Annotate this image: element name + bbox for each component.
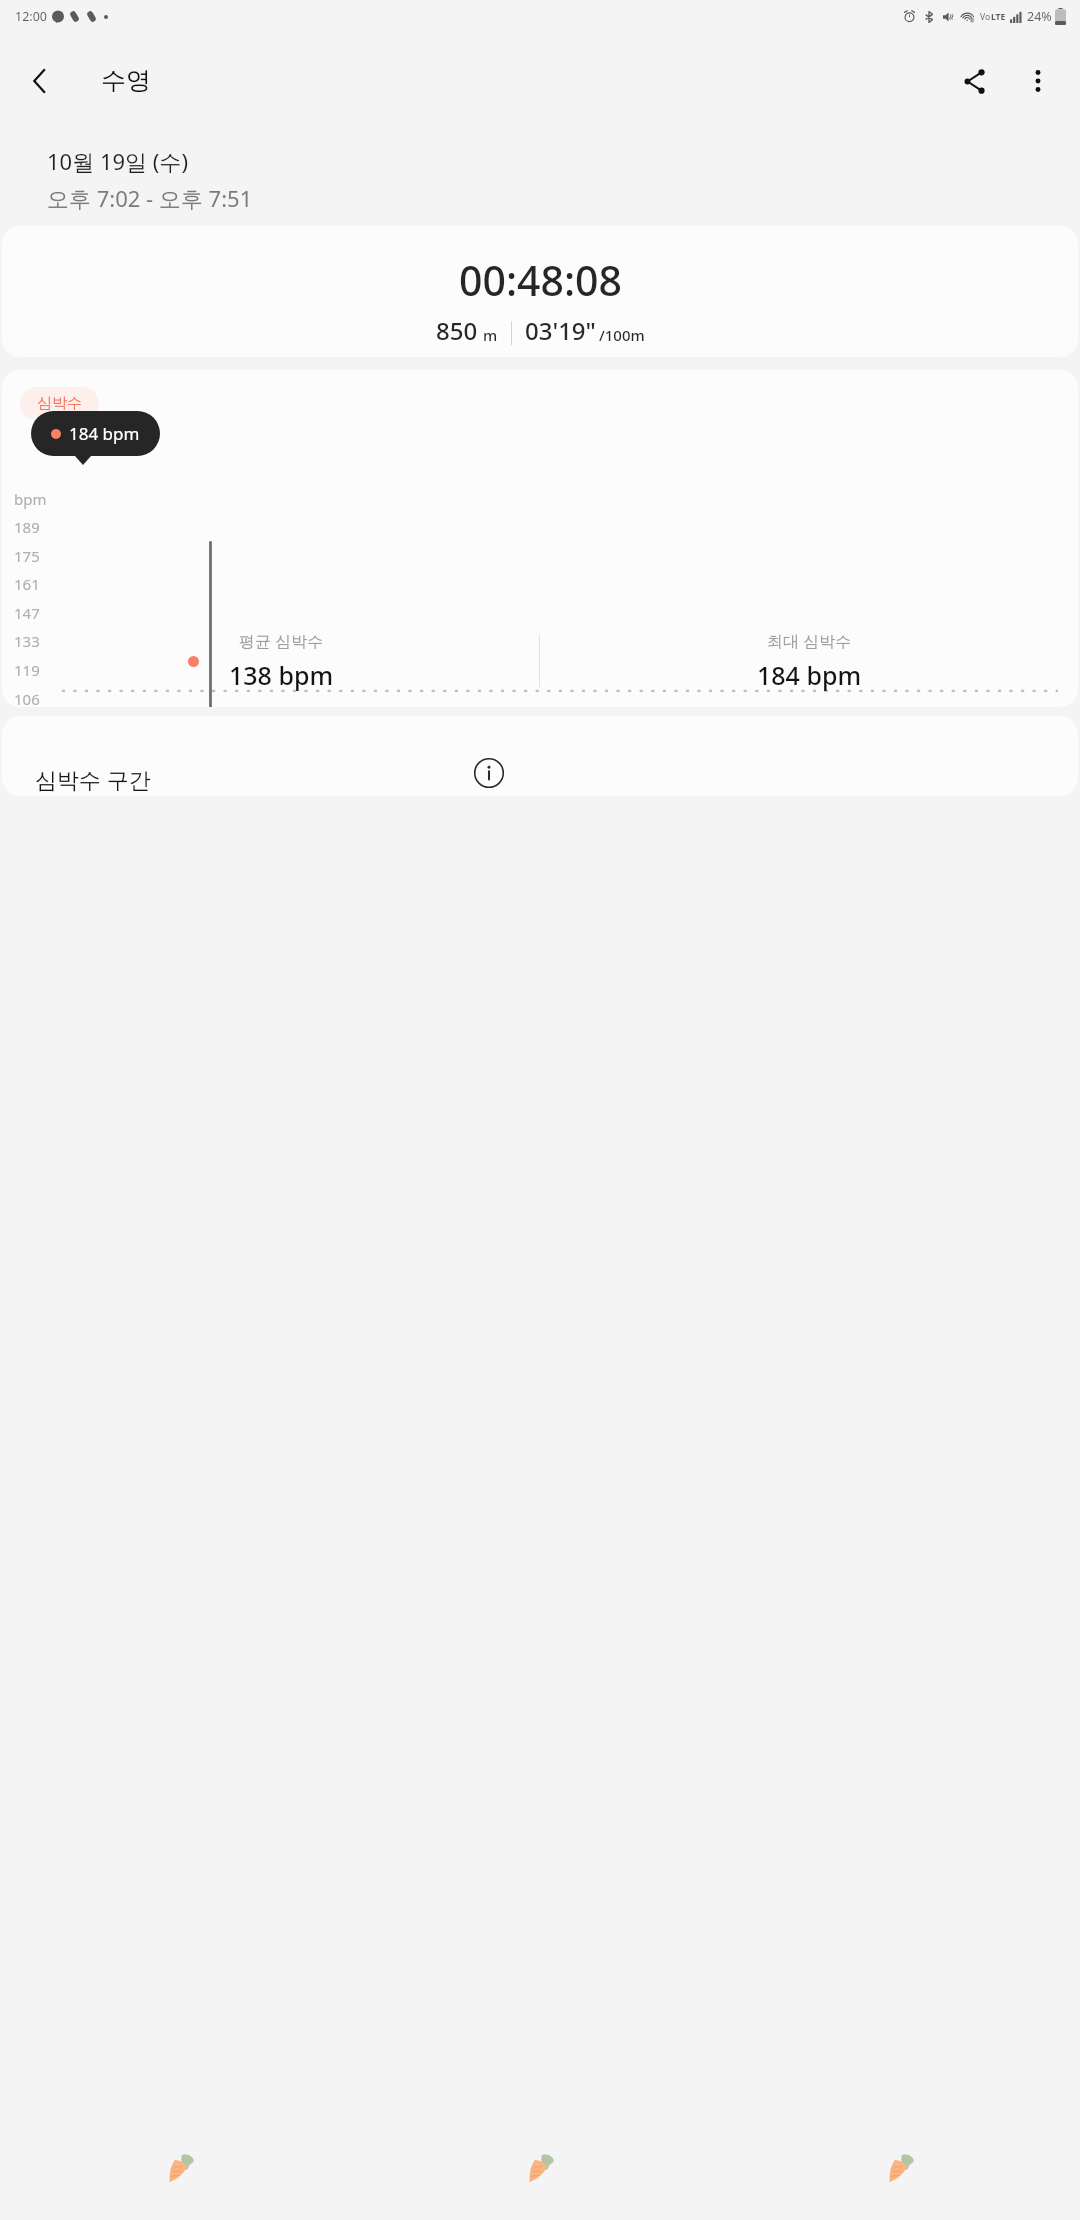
button[interactable]: Share — [942, 49, 1006, 113]
button[interactable]: Back — [8, 49, 72, 113]
staticText: 평균 심박수 — [239, 630, 324, 652]
other: Info — [472, 756, 506, 790]
staticText: 161 — [14, 574, 40, 594]
staticText: 오후 7:02 - 오후 7:51 — [47, 183, 253, 213]
staticText: 175 — [14, 546, 40, 566]
staticText: 184 bpm — [757, 658, 862, 692]
button[interactable]: 심박수 구간 — [2, 716, 1078, 796]
staticText: 133 — [14, 631, 40, 651]
staticText: bpm — [14, 489, 47, 509]
button[interactable]: Profile — [720, 2116, 1080, 2220]
staticText: LTE — [991, 11, 1006, 23]
button[interactable]: More options — [1006, 49, 1070, 113]
button[interactable]: 00:48:08 — [2, 226, 1078, 357]
staticText: 189 — [14, 517, 40, 537]
staticText: 24% — [1027, 8, 1052, 25]
staticText: 03'19" — [525, 314, 596, 347]
staticText: Vo — [980, 11, 991, 23]
staticText: 최대 심박수 — [767, 630, 852, 652]
staticText: 수영 — [101, 65, 151, 96]
staticText: 심박수 — [37, 394, 82, 413]
staticText: /100m — [599, 325, 645, 345]
staticText: 10월 19일 (수) — [47, 146, 188, 176]
staticText: 850 — [436, 314, 478, 347]
button[interactable]: 심박수 — [2, 370, 1078, 707]
staticText: 147 — [14, 603, 40, 623]
staticText: 00:48:08 — [459, 252, 623, 308]
staticText: 106 — [14, 689, 40, 707]
staticText: 12:00 — [15, 8, 47, 25]
staticText: 184 bpm — [69, 422, 140, 445]
staticText: 심박수 구간 — [35, 764, 151, 794]
staticText: m — [483, 325, 498, 345]
button[interactable]: Home — [0, 2116, 360, 2220]
staticText: 119 — [14, 660, 40, 680]
staticText: 138 bpm — [229, 658, 334, 692]
button[interactable]: Together — [360, 2116, 720, 2220]
